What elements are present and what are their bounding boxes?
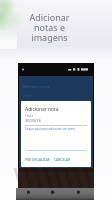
button[interactable]: PRÉ-VISUALIZAR (25, 158, 50, 162)
staticText: Adicionar nota (25, 106, 59, 113)
staticText: Minhas notas (23, 84, 50, 90)
staticText: CANCELAR (54, 158, 71, 162)
button[interactable]: Toque aqui para adicionar um texto (25, 127, 76, 131)
staticText: Hoje (23, 93, 32, 98)
staticText: 30/05/16 (25, 118, 41, 123)
staticText: Título (25, 114, 33, 118)
staticText: PRÉ-VISUALIZAR (25, 158, 50, 162)
staticText: Adicionar notas e imagens (26, 11, 73, 43)
button[interactable]: CANCELAR (54, 158, 71, 162)
staticText: Toque aqui para adicionar um texto (25, 127, 76, 131)
